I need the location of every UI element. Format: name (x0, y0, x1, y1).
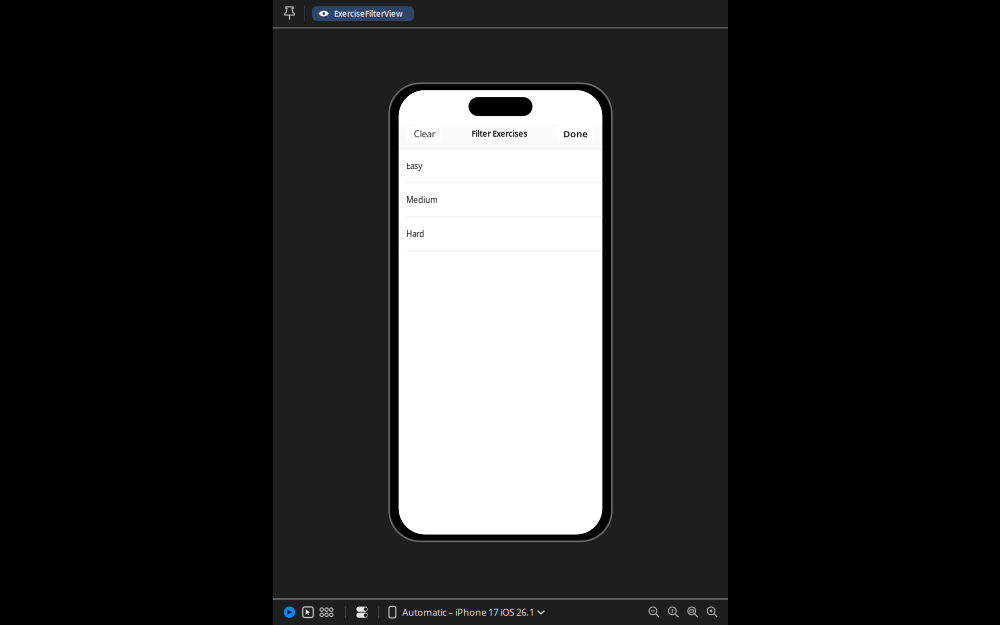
button[interactable]: Hard (399, 217, 602, 251)
staticText: Medium (406, 194, 437, 205)
staticText: Easy (406, 160, 422, 171)
button[interactable]: Play preview (281, 602, 298, 622)
staticText: Clear (414, 127, 436, 140)
button[interactable]: Clear (406, 124, 444, 143)
button[interactable]: Preview variants (318, 602, 335, 622)
button[interactable]: Pin preview (279, 3, 300, 25)
button[interactable]: Zoom out (644, 602, 664, 622)
button[interactable]: Zoom in (703, 602, 722, 622)
button[interactable]: Preview options (356, 602, 368, 622)
staticText: ExerciseFilterView (334, 8, 403, 19)
staticText: Hard (406, 228, 424, 239)
button[interactable]: Select element (300, 602, 316, 622)
button[interactable]: Medium (399, 183, 602, 217)
button[interactable]: Automatic – iPhone 17 iOS 26.1 (389, 599, 545, 625)
button[interactable]: Zoom to fit (664, 602, 683, 622)
button[interactable]: Done (555, 124, 595, 143)
staticText: Filter Exercises (471, 128, 527, 139)
staticText: Done (563, 127, 587, 140)
staticText: Automatic – iPhone 17 iOS 26.1 (402, 606, 534, 618)
button[interactable]: ExerciseFilterView (312, 6, 414, 21)
button[interactable]: Easy (399, 149, 602, 183)
button[interactable]: Zoom to 100 percent (683, 602, 703, 622)
